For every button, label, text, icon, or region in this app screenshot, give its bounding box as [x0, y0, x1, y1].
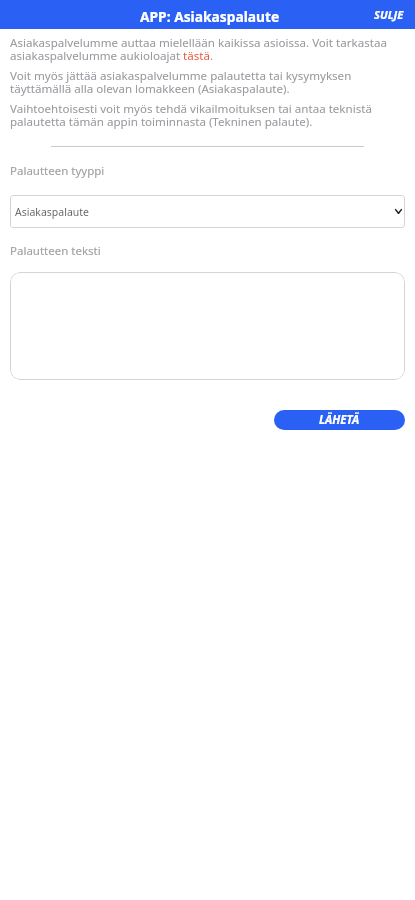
button[interactable]: Asiakaspalvelumme auttaa mielellään kaik…: [10, 35, 405, 64]
staticText: Palautteen tyyppi: [10, 163, 105, 179]
staticText: Vaihtoehtoisesti voit myös tehdä vikailm…: [10, 101, 405, 130]
staticText: LÄHETÄ: [319, 412, 360, 428]
staticText: SULJE: [374, 7, 404, 22]
button[interactable]: Palautteen teksti: [10, 272, 405, 380]
staticText: Asiakaspalaute: [15, 205, 90, 219]
staticText: Palautteen teksti: [10, 243, 101, 259]
staticText: APP: Asiakaspalaute: [140, 7, 280, 26]
button[interactable]: Asiakaspalaute: [10, 195, 405, 228]
button[interactable]: LÄHETÄ: [274, 410, 405, 430]
button[interactable]: Sulje: [368, 3, 415, 26]
staticText: Voit myös jättää asiakaspalvelumme palau…: [10, 68, 405, 97]
